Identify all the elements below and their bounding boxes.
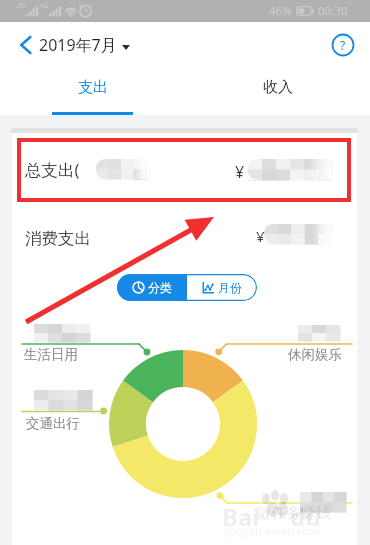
staticText: du	[290, 500, 321, 533]
staticText: 00:30	[318, 3, 348, 19]
button[interactable]: 总支出(	[25, 137, 341, 202]
button[interactable]: 月份	[187, 274, 257, 301]
staticText: ¥	[256, 226, 265, 246]
button[interactable]: 支出	[0, 68, 185, 115]
staticText: 2019年7月	[39, 34, 117, 56]
staticText: 交通出行	[26, 415, 80, 432]
staticText: 月份	[218, 280, 242, 295]
button[interactable]: 分类	[117, 274, 187, 301]
staticText: 总支出(	[25, 158, 80, 181]
button[interactable]: Back	[6, 27, 42, 63]
staticText: 生活日用	[24, 346, 78, 363]
staticText: jingyan.baidu.com	[224, 523, 320, 538]
staticText: 支出	[78, 78, 108, 97]
staticText: 做任务赚钱	[256, 504, 331, 523]
button[interactable]: 收入	[185, 68, 370, 115]
staticText: ¥	[235, 161, 245, 183]
button[interactable]: 消费支出	[25, 203, 341, 273]
staticText: ?	[340, 37, 346, 53]
button[interactable]: Help	[328, 30, 358, 60]
staticText: 46%	[269, 3, 292, 19]
staticText: 分类	[148, 280, 172, 295]
staticText: 消费支出	[25, 228, 91, 249]
staticText: Bai	[222, 500, 260, 533]
staticText: 休闲娱乐	[288, 346, 342, 363]
staticText: 2G	[17, 1, 26, 10]
staticText: 4G	[40, 1, 49, 10]
staticText: 收入	[263, 78, 293, 97]
